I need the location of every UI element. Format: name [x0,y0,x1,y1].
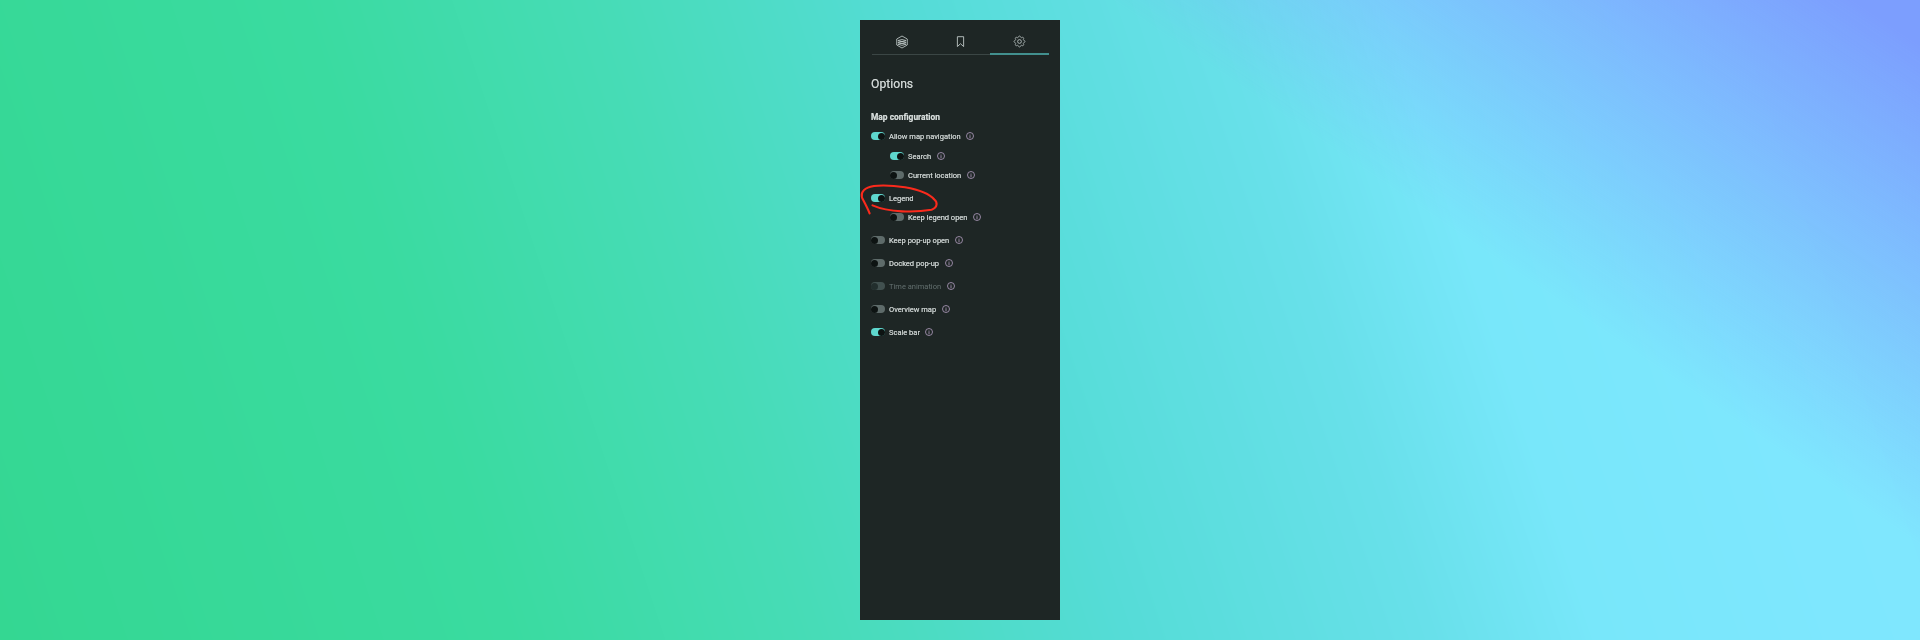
staticText: Keep legend open [908,213,968,222]
button[interactable]: Bookmarks [931,20,990,55]
staticText: Keep pop-up open [889,236,950,245]
button[interactable]: Switch off [860,210,1060,224]
staticText: Legend [889,194,914,203]
button[interactable]: Switch on [890,152,905,160]
other: More info [973,213,981,221]
button[interactable]: Switch off [871,305,886,313]
button[interactable]: Switch on [860,129,1060,143]
staticText: Map configuration [871,112,941,122]
other: More info [945,259,953,267]
other: More info [967,171,975,179]
button[interactable]: Switch on [871,194,886,202]
other: More info [947,282,955,290]
other: More info [937,152,945,160]
button[interactable]: Switch off [860,233,1060,247]
staticText: Overview map [889,305,937,314]
staticText: Current location [908,171,962,180]
button[interactable]: Settings [990,20,1049,55]
other: More info [966,132,974,140]
staticText: Options [871,77,914,91]
button[interactable]: Switch off [860,168,1060,182]
button[interactable]: Switch off [860,279,1060,293]
staticText: Time animation [889,282,942,291]
button[interactable]: Switch on [871,132,886,140]
button[interactable]: Switch on [871,328,886,336]
staticText: Scale bar [889,328,920,337]
staticText: Search [908,152,932,161]
button[interactable]: Switch off [871,282,886,290]
button[interactable]: Switch on [860,149,1060,163]
button[interactable]: Switch off [871,236,886,244]
button[interactable]: Switch off [871,259,886,267]
other: More info [942,305,950,313]
other: More info [925,328,933,336]
button[interactable]: Switch off [860,302,1060,316]
staticText: Docked pop-up [889,259,940,268]
staticText: Allow map navigation [889,132,961,141]
button[interactable]: Switch on [860,191,1060,205]
other: More info [955,236,963,244]
button[interactable]: Switch on [860,325,1060,339]
button[interactable]: Switch off [860,256,1060,270]
button[interactable]: Layers [872,20,931,55]
button[interactable]: Switch off [890,171,905,179]
button[interactable]: Switch off [890,213,905,221]
